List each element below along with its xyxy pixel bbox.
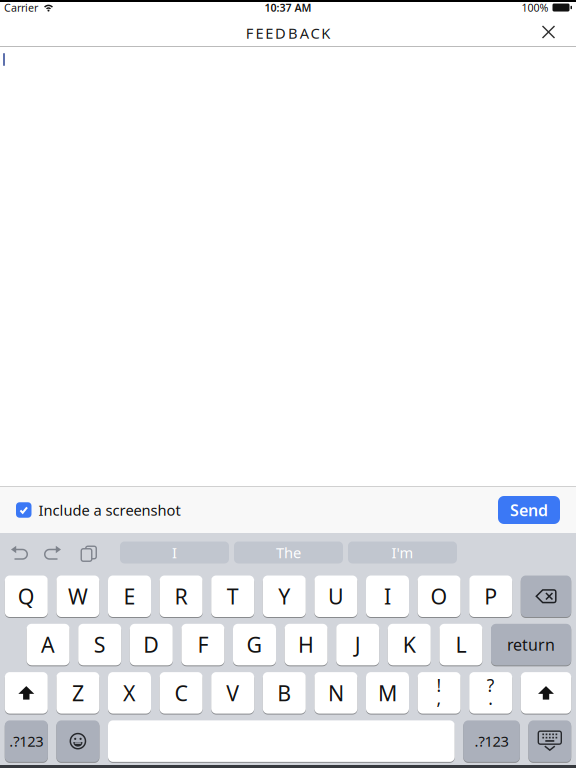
staticText: H bbox=[298, 630, 314, 659]
staticText: F bbox=[197, 630, 208, 659]
button[interactable]: ! bbox=[418, 672, 461, 714]
button[interactable]: Redo bbox=[28, 545, 62, 560]
button[interactable]: Include a screenshot bbox=[0, 500, 180, 520]
staticText: N bbox=[328, 679, 344, 707]
staticText: 100% bbox=[521, 0, 548, 15]
button[interactable]: H bbox=[285, 624, 328, 665]
button[interactable]: Shift bbox=[521, 672, 571, 714]
staticText: Send bbox=[510, 499, 548, 521]
staticText: Include a screenshot bbox=[38, 500, 180, 520]
button[interactable]: S bbox=[78, 624, 121, 665]
staticText: D bbox=[143, 630, 159, 659]
staticText: R bbox=[175, 582, 188, 610]
staticText: P bbox=[484, 582, 497, 610]
staticText: Z bbox=[72, 679, 84, 707]
button[interactable]: V bbox=[211, 672, 254, 714]
staticText: . bbox=[488, 687, 493, 710]
button[interactable]: Numbers bbox=[5, 720, 48, 762]
staticText: Carrier bbox=[4, 0, 38, 15]
staticText: A bbox=[300, 23, 309, 43]
button[interactable]: Y bbox=[263, 575, 306, 617]
button[interactable]: Undo bbox=[0, 545, 28, 560]
button[interactable]: J bbox=[336, 624, 379, 665]
button[interactable]: ? bbox=[469, 672, 512, 714]
staticText: , bbox=[437, 687, 442, 710]
staticText: L bbox=[455, 630, 466, 659]
staticText: ? bbox=[487, 674, 495, 697]
staticText: 10:37 AM bbox=[264, 0, 311, 15]
button[interactable]: Q bbox=[5, 575, 48, 617]
button[interactable]: Dismiss keyboard bbox=[528, 720, 571, 762]
staticText: .?123 bbox=[475, 731, 509, 751]
button[interactable]: Return bbox=[491, 624, 571, 665]
button[interactable]: E bbox=[108, 575, 151, 617]
button[interactable]: Delete bbox=[521, 575, 571, 617]
button[interactable]: F bbox=[181, 624, 224, 665]
staticText: G bbox=[246, 630, 262, 659]
button[interactable]: D bbox=[130, 624, 173, 665]
button[interactable]: P bbox=[469, 575, 512, 617]
button[interactable]: Emoji bbox=[56, 720, 99, 762]
staticText: J bbox=[355, 630, 361, 659]
button[interactable]: Send bbox=[498, 496, 576, 524]
staticText: F bbox=[246, 23, 254, 43]
staticText: B bbox=[277, 679, 291, 707]
staticText: M bbox=[378, 679, 397, 707]
staticText: D bbox=[275, 23, 286, 43]
staticText: B bbox=[288, 23, 298, 43]
button[interactable]: Numbers bbox=[463, 720, 520, 762]
button[interactable]: T bbox=[211, 575, 254, 617]
button[interactable]: K bbox=[388, 624, 431, 665]
button[interactable]: O bbox=[418, 575, 461, 617]
button[interactable]: Space bbox=[108, 720, 455, 762]
staticText: Y bbox=[278, 582, 290, 610]
button[interactable]: L bbox=[439, 624, 482, 665]
staticText: I bbox=[384, 582, 391, 610]
staticText: ! bbox=[437, 674, 442, 697]
staticText: K bbox=[321, 23, 330, 43]
button[interactable]: G bbox=[233, 624, 276, 665]
staticText: X bbox=[123, 679, 136, 707]
button[interactable]: C bbox=[160, 672, 203, 714]
staticText: A bbox=[41, 630, 55, 659]
button[interactable]: Paste bbox=[62, 545, 94, 560]
button[interactable]: B bbox=[263, 672, 306, 714]
staticText: W bbox=[68, 582, 88, 610]
button[interactable]: Z bbox=[56, 672, 99, 714]
staticText: C bbox=[175, 679, 188, 707]
staticText: The bbox=[276, 543, 301, 562]
staticText: Q bbox=[18, 582, 35, 610]
staticText: C bbox=[310, 23, 319, 43]
staticText: .?123 bbox=[9, 731, 43, 751]
button[interactable]: W bbox=[56, 575, 99, 617]
staticText: I'm bbox=[391, 543, 413, 562]
staticText: E bbox=[123, 582, 135, 610]
staticText: O bbox=[431, 582, 448, 610]
button[interactable]: Shift bbox=[5, 672, 48, 714]
button[interactable]: I bbox=[120, 541, 229, 563]
button[interactable]: U bbox=[314, 575, 357, 617]
staticText: S bbox=[94, 630, 106, 659]
button[interactable]: M bbox=[366, 672, 409, 714]
staticText: E bbox=[265, 23, 273, 43]
button[interactable]: Close bbox=[542, 26, 576, 39]
staticText: T bbox=[227, 582, 239, 610]
staticText: return bbox=[507, 634, 555, 655]
button[interactable]: The bbox=[234, 541, 343, 563]
button[interactable]: N bbox=[314, 672, 357, 714]
button[interactable]: R bbox=[160, 575, 203, 617]
staticText: K bbox=[403, 630, 416, 659]
staticText: V bbox=[226, 679, 239, 707]
staticText: I bbox=[172, 543, 177, 562]
button[interactable]: I bbox=[366, 575, 409, 617]
button[interactable]: X bbox=[108, 672, 151, 714]
staticText: U bbox=[328, 582, 344, 610]
button[interactable]: I'm bbox=[348, 541, 457, 563]
button[interactable]: A bbox=[27, 624, 70, 665]
staticText: E bbox=[255, 23, 263, 43]
